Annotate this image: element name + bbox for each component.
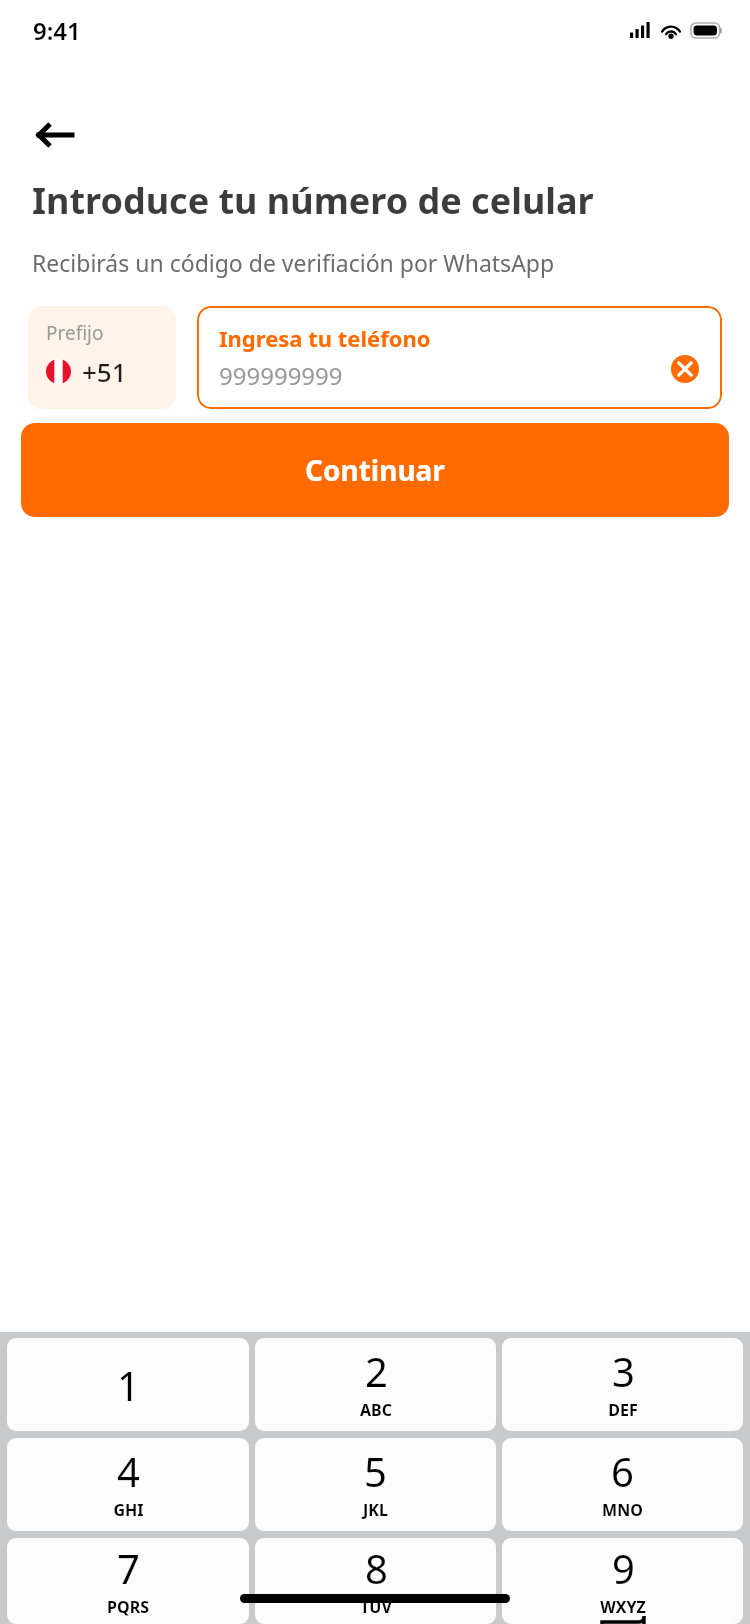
staticText: WXYZ	[600, 1596, 646, 1618]
staticText: 9	[612, 1541, 635, 1595]
button[interactable]: Continuar	[21, 423, 729, 517]
button[interactable]: 5	[255, 1438, 496, 1531]
button[interactable]: Ingresa tu teléfono	[197, 306, 722, 409]
staticText: DEF	[608, 1399, 638, 1421]
staticText: GHI	[113, 1499, 144, 1521]
button[interactable]: 1	[7, 1338, 249, 1431]
staticText: 9:41	[33, 14, 81, 47]
staticText: 8	[365, 1541, 388, 1595]
staticText: +51	[82, 354, 127, 389]
button[interactable]: Back	[32, 112, 78, 158]
staticText: 5	[364, 1444, 387, 1498]
button[interactable]: Prefijo	[28, 306, 176, 409]
staticText: PQRS	[107, 1596, 149, 1618]
button[interactable]: 9	[502, 1538, 743, 1624]
staticText: JKL	[363, 1499, 388, 1521]
staticText: 3	[612, 1344, 635, 1398]
staticText: TUV	[360, 1596, 392, 1618]
staticText: Introduce tu número de celular	[32, 176, 594, 225]
staticText: 7	[117, 1541, 140, 1595]
staticText: 6	[611, 1444, 634, 1498]
button[interactable]: 6	[502, 1438, 743, 1531]
button[interactable]: 8	[255, 1538, 496, 1624]
staticText: Continuar	[305, 451, 445, 489]
staticText: Prefijo	[46, 320, 104, 346]
staticText: Recibirás un código de verifiación por W…	[32, 247, 555, 278]
staticText: 1	[117, 1358, 140, 1412]
staticText: ABC	[360, 1399, 392, 1421]
button[interactable]: 2	[255, 1338, 496, 1431]
staticText: 4	[117, 1444, 140, 1498]
button[interactable]: 3	[502, 1338, 743, 1431]
button[interactable]: 4	[7, 1438, 249, 1531]
staticText: Ingresa tu teléfono	[219, 323, 431, 353]
staticText: 999999999	[219, 359, 343, 392]
staticText: MNO	[602, 1499, 643, 1521]
button[interactable]: Clear	[666, 350, 704, 388]
staticText: 2	[365, 1344, 388, 1398]
button[interactable]: 7	[7, 1538, 249, 1624]
